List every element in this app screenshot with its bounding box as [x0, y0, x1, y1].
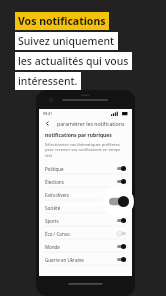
button[interactable]: Toggle Société notifications [103, 186, 134, 217]
staticText: Monde [45, 244, 60, 250]
staticText: Politique [45, 166, 64, 172]
button[interactable]: Switch on [117, 205, 126, 210]
staticText: paramétrer les notifications [57, 120, 125, 127]
staticText: Sélectionnez vos thématiques préférées p… [45, 142, 121, 158]
button[interactable]: Élections [39, 175, 132, 188]
staticText: Élections [45, 179, 64, 185]
staticText: Société [45, 205, 61, 211]
staticText: les actualités qui vous [18, 54, 129, 68]
button[interactable]: Back [39, 117, 132, 130]
staticText: Sports [45, 218, 59, 224]
staticText: intéressent. [18, 74, 78, 88]
button[interactable]: Switch on [117, 257, 126, 262]
staticText: Éco / Conso [45, 231, 70, 237]
button[interactable]: Switch off [117, 231, 126, 236]
button[interactable]: Guerre en Ukraine [39, 253, 132, 266]
button[interactable]: Switch on [117, 244, 126, 249]
button[interactable]: Switch on [117, 179, 126, 184]
button[interactable]: Back [43, 119, 52, 128]
staticText: Vos notifications [18, 14, 106, 28]
button[interactable]: Éco / Conso [39, 227, 132, 240]
button[interactable]: Société [39, 201, 132, 214]
staticText: Faits-divers [45, 192, 70, 198]
button[interactable]: Switch on [117, 166, 126, 171]
button[interactable]: Sports [39, 214, 132, 227]
button[interactable]: Faits-divers [39, 188, 132, 201]
button[interactable]: Switch on [117, 218, 126, 223]
button[interactable]: Politique [39, 162, 132, 175]
button[interactable]: Monde [39, 240, 132, 253]
staticText: Guerre en Ukraine [45, 257, 84, 263]
staticText: Suivez uniquement [18, 34, 115, 48]
button[interactable]: Switch on [117, 192, 126, 197]
staticText: notifications par rubriques [45, 132, 112, 139]
staticText: 09:41 [43, 111, 52, 116]
